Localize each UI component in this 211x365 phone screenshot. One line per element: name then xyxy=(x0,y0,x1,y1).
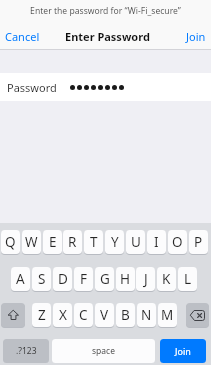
button[interactable]: L xyxy=(178,267,197,291)
button[interactable]: U xyxy=(126,230,145,254)
button[interactable]: C xyxy=(74,303,93,327)
button[interactable]: Y xyxy=(105,230,124,254)
staticText: Enter Password xyxy=(65,29,150,44)
button[interactable]: Z xyxy=(32,303,51,327)
staticText: P xyxy=(194,233,203,251)
staticText: J xyxy=(144,270,148,288)
button[interactable]: V xyxy=(95,303,114,327)
staticText: L xyxy=(184,270,192,288)
staticText: Join xyxy=(186,29,206,44)
staticText: B xyxy=(121,306,130,324)
button[interactable]: D xyxy=(53,267,72,291)
staticText: Enter the password for “Wi-Fi_secure” xyxy=(30,5,181,17)
staticText: F xyxy=(80,270,88,288)
button[interactable]: J xyxy=(136,267,155,291)
staticText: O xyxy=(172,233,183,251)
button[interactable]: P xyxy=(189,230,208,254)
button[interactable]: S xyxy=(32,267,51,291)
staticText: V xyxy=(100,306,109,324)
staticText: Join xyxy=(175,345,191,357)
staticText: M xyxy=(161,306,174,324)
staticText: G xyxy=(100,270,110,288)
button[interactable]: A xyxy=(11,267,30,291)
staticText: A xyxy=(16,270,25,288)
staticText: X xyxy=(59,306,67,324)
staticText: .?123 xyxy=(16,345,37,357)
button[interactable]: .?123 xyxy=(3,339,49,363)
button[interactable]: Join xyxy=(181,24,211,49)
staticText: C xyxy=(79,306,88,324)
button[interactable]: K xyxy=(157,267,176,291)
staticText: E xyxy=(49,233,57,251)
button[interactable]: F xyxy=(74,267,93,291)
staticText: N xyxy=(141,306,152,324)
button[interactable]: B xyxy=(116,303,135,327)
staticText: I xyxy=(154,233,159,251)
staticText: S xyxy=(38,270,46,288)
button[interactable]: space xyxy=(52,339,155,363)
staticText: Cancel xyxy=(5,29,40,44)
button[interactable]: Backspace xyxy=(186,303,209,327)
staticText: Y xyxy=(111,233,119,251)
button[interactable]: Q xyxy=(1,230,20,254)
staticText: Q xyxy=(5,233,16,251)
staticText: Password xyxy=(7,80,57,95)
staticText: W xyxy=(25,233,38,251)
button[interactable]: Shift xyxy=(1,303,25,327)
button[interactable]: E xyxy=(43,230,62,254)
button[interactable]: H xyxy=(116,267,135,291)
button[interactable]: I xyxy=(147,230,166,254)
button[interactable]: W xyxy=(22,230,41,254)
button[interactable]: G xyxy=(95,267,114,291)
button[interactable]: T xyxy=(84,230,103,254)
staticText: T xyxy=(90,233,98,251)
staticText: K xyxy=(162,270,171,288)
staticText: H xyxy=(120,270,131,288)
staticText: Z xyxy=(38,306,46,324)
button[interactable]: N xyxy=(137,303,156,327)
button[interactable]: Cancel xyxy=(0,24,45,49)
staticText: R xyxy=(68,233,77,251)
button[interactable]: M xyxy=(158,303,177,327)
button[interactable]: X xyxy=(53,303,72,327)
staticText: U xyxy=(131,233,141,251)
button[interactable]: Join xyxy=(160,339,206,363)
staticText: D xyxy=(58,270,68,288)
button[interactable]: O xyxy=(168,230,187,254)
staticText: space xyxy=(92,345,115,357)
button[interactable]: R xyxy=(63,230,82,254)
button[interactable]: Password xyxy=(0,73,211,101)
